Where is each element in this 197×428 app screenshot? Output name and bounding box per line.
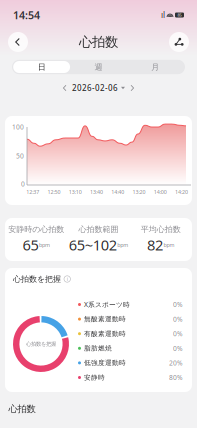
staticText: 20% xyxy=(169,358,183,367)
staticText: ıl xyxy=(161,10,165,20)
staticText: 100 xyxy=(12,123,24,131)
staticText: 安静時の心拍数 xyxy=(8,224,64,234)
staticText: 0% xyxy=(173,329,183,338)
staticText: 月 xyxy=(151,62,159,72)
staticText: 心拍数 xyxy=(79,34,118,50)
staticText: 82 xyxy=(147,235,163,255)
staticText: 13:10 xyxy=(69,188,82,196)
button[interactable]: Back xyxy=(8,32,28,52)
staticText: 0% xyxy=(173,344,183,353)
button[interactable]: 日 xyxy=(13,61,70,73)
staticText: 脂肪燃焼 xyxy=(84,344,112,352)
staticText: 心拍数を把握 xyxy=(26,341,56,347)
staticText: 14:00 xyxy=(154,188,167,196)
staticText: 13:20 xyxy=(132,188,145,196)
staticText: 14:40 xyxy=(111,188,124,196)
staticText: 週 xyxy=(94,62,102,72)
staticText: 心拍数範囲 xyxy=(78,224,118,234)
button[interactable]: Next day xyxy=(125,81,140,95)
staticText: 安静時 xyxy=(84,373,105,382)
staticText: 14:54 xyxy=(13,8,40,22)
button[interactable]: Previous day xyxy=(57,81,72,95)
staticText: 心拍数 xyxy=(8,403,35,415)
staticText: 14:20 xyxy=(175,188,188,196)
staticText: 13:40 xyxy=(90,188,103,196)
staticText: X系スポーツ時 xyxy=(84,300,130,309)
staticText: 有酸素運動時 xyxy=(84,330,126,338)
staticText: 心拍数を把握 xyxy=(13,274,61,284)
button[interactable]: 月 xyxy=(127,61,184,73)
staticText: 12:37 xyxy=(26,188,39,196)
staticText: 85 xyxy=(177,12,181,18)
staticText: 65~102 xyxy=(69,235,117,255)
staticText: 80% xyxy=(169,373,183,382)
staticText: 0% xyxy=(173,315,183,324)
staticText: i xyxy=(67,275,68,283)
staticText: 日 xyxy=(38,62,46,72)
staticText: 65 xyxy=(22,235,38,255)
staticText: 平均心拍数 xyxy=(141,224,181,234)
button[interactable]: Share xyxy=(169,32,189,52)
button[interactable]: 週 xyxy=(70,61,127,73)
staticText: 低強度運動時 xyxy=(84,359,126,367)
staticText: 無酸素運動時 xyxy=(84,315,126,323)
button[interactable]: Information xyxy=(61,274,70,284)
staticText: 0 xyxy=(21,180,25,188)
staticText: 12:50 xyxy=(47,188,60,196)
staticText: 0% xyxy=(173,300,183,309)
staticText: bpm xyxy=(117,241,128,248)
staticText: 50 xyxy=(16,152,24,160)
staticText: bpm xyxy=(39,241,50,248)
staticText: 2026-02-06 xyxy=(72,83,118,93)
staticText: bpm xyxy=(164,241,175,248)
